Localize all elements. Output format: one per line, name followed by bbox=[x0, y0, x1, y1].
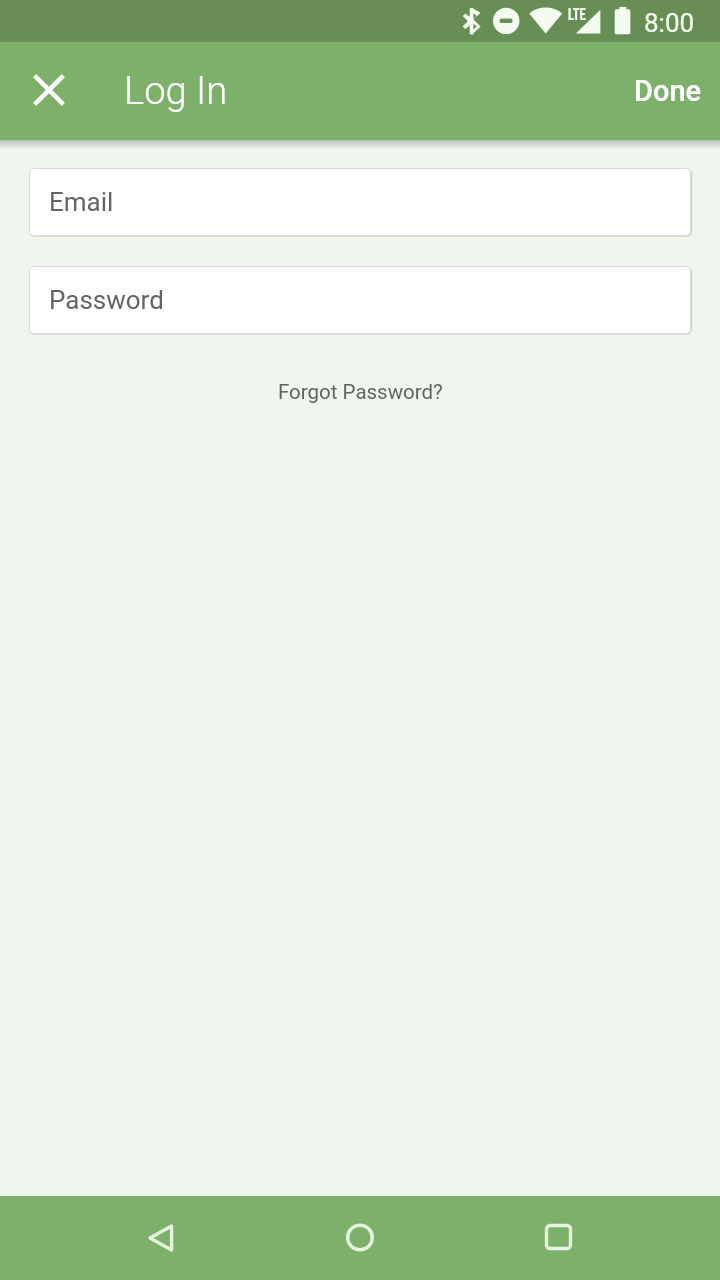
button[interactable]: Password bbox=[29, 266, 691, 334]
staticText: Done bbox=[634, 74, 702, 108]
staticText: Password bbox=[49, 285, 164, 315]
button[interactable]: Recent apps bbox=[508, 1196, 608, 1280]
button[interactable]: Forgot Password? bbox=[264, 372, 457, 412]
staticText: Forgot Password? bbox=[278, 380, 443, 404]
button[interactable]: Email bbox=[29, 168, 691, 236]
staticText: LTE bbox=[568, 5, 586, 24]
button[interactable]: Home bbox=[310, 1196, 410, 1280]
button[interactable]: Close bbox=[14, 64, 84, 116]
button[interactable]: Done bbox=[612, 52, 720, 130]
staticText: Email bbox=[49, 187, 114, 217]
button[interactable]: Back bbox=[111, 1196, 211, 1280]
staticText: Log In bbox=[124, 69, 228, 114]
staticText: 8:00 bbox=[644, 8, 695, 38]
